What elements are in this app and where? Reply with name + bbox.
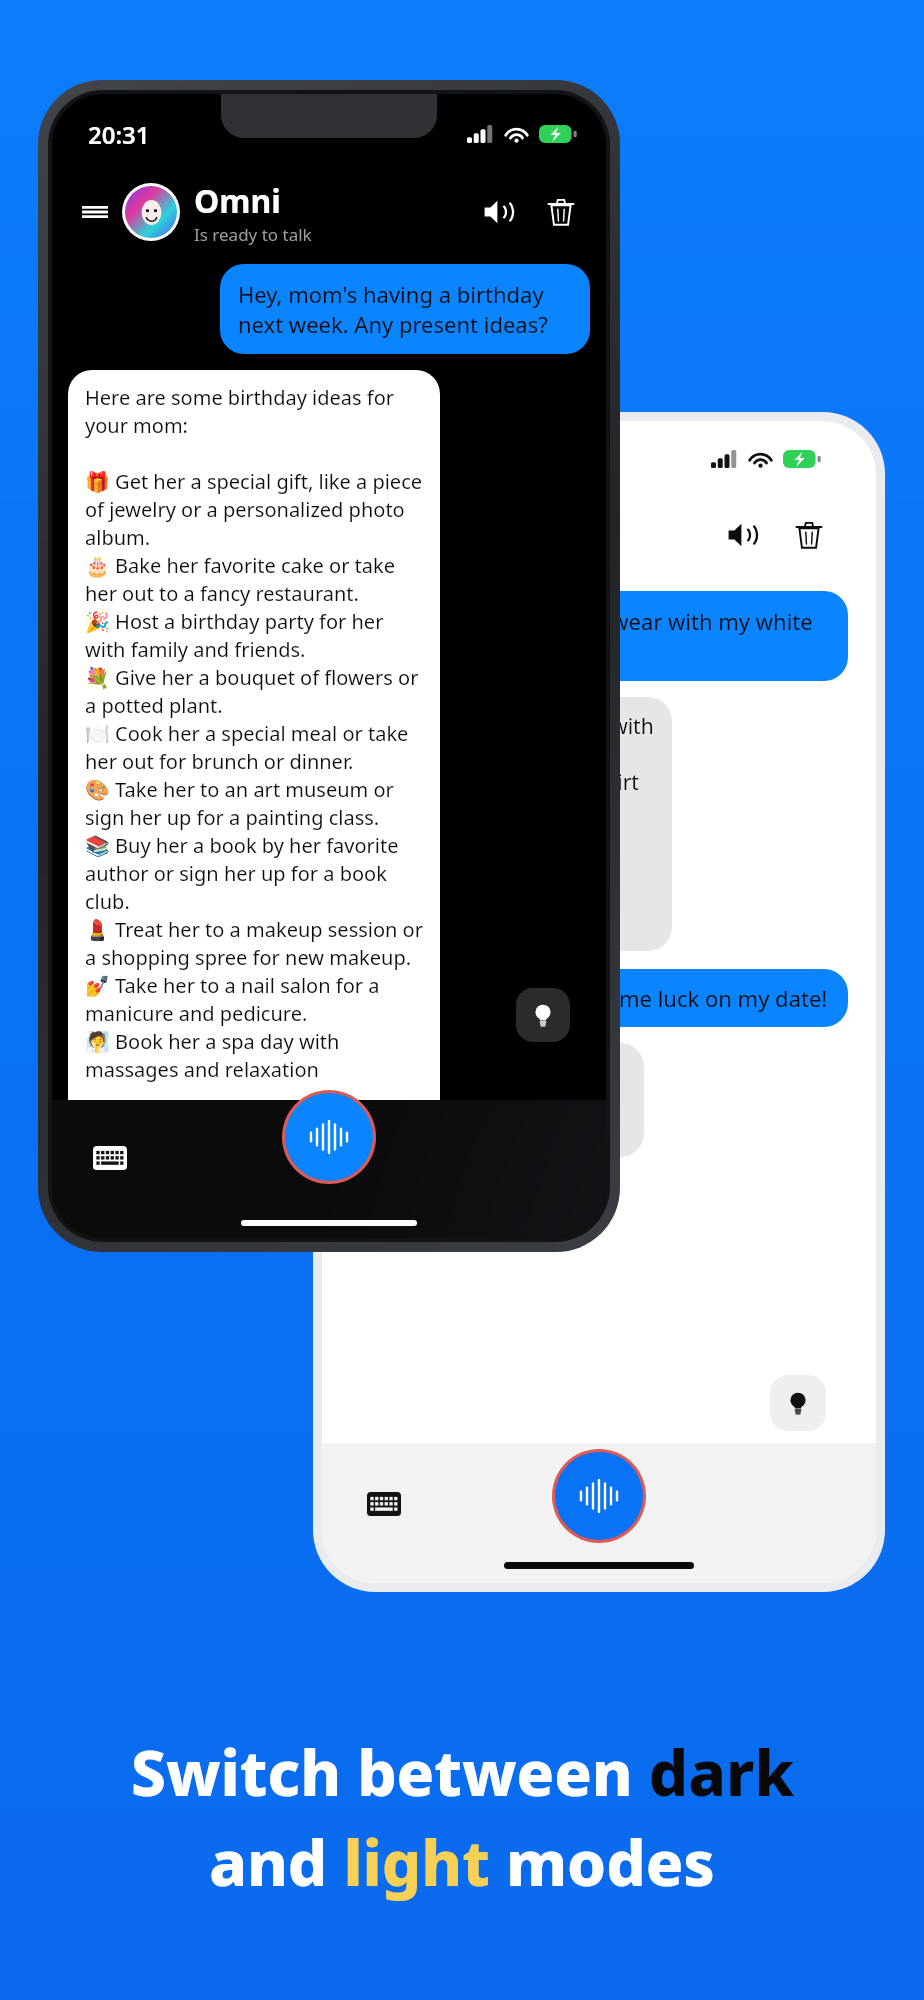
staticText: Is ready to talk — [194, 223, 312, 246]
button[interactable]: Ideas — [516, 988, 570, 1042]
staticText: Omni — [194, 179, 281, 223]
staticText: Pair your white shirt well with a 👗 You … — [362, 712, 654, 936]
staticText: I wish you the best of luck! I hope you … — [362, 1058, 588, 1142]
button[interactable]: Hey, mom's having a birthday next week. … — [220, 264, 590, 354]
button[interactable]: Speaker — [720, 512, 766, 558]
button[interactable]: Keyboard — [366, 1486, 402, 1522]
staticText: Hey, mom's having a birthday next week. … — [238, 279, 572, 339]
button[interactable]: I wish you the best of luck! I hope you … — [344, 1043, 644, 1157]
button[interactable]: Wish me luck on my date! — [543, 969, 848, 1027]
button[interactable]: What should I wear with my white shirt? — [444, 591, 848, 681]
button[interactable]: Pair your white shirt well with a 👗 You … — [344, 697, 672, 951]
staticText: Wish me luck on my date! — [563, 983, 828, 1013]
staticText: Here are some birthday ideas for your mo… — [85, 384, 423, 1082]
button[interactable]: Ideas — [770, 1375, 826, 1431]
button[interactable]: Voice input — [555, 1452, 643, 1540]
button[interactable]: Delete — [538, 189, 584, 235]
staticText: and light modes — [209, 1820, 715, 1904]
button[interactable]: Keyboard — [92, 1140, 128, 1176]
button[interactable]: Menu — [74, 191, 116, 233]
button[interactable]: Speaker — [476, 189, 522, 235]
button[interactable]: Here are some birthday ideas for your mo… — [68, 370, 440, 1100]
button[interactable]: Voice input — [285, 1093, 373, 1181]
staticText: What should I wear with my white shirt? — [462, 606, 830, 666]
staticText: 20:31 — [88, 118, 150, 151]
staticText: Switch between dark — [131, 1730, 794, 1814]
button[interactable]: Delete — [786, 512, 832, 558]
